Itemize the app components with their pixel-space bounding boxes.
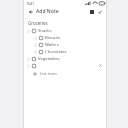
staticText: Chocolates <box>45 49 67 55</box>
staticText: Wafers <box>45 42 59 48</box>
button[interactable]: Save note <box>96 8 103 15</box>
button[interactable]: Back <box>27 8 34 15</box>
button[interactable]: Background color <box>88 8 95 15</box>
button[interactable]: Chocolates <box>24 48 106 55</box>
button[interactable]: Snacks <box>24 27 106 34</box>
staticText: Add Note <box>36 8 59 15</box>
staticText: Groceries <box>28 20 48 26</box>
button[interactable]: List item <box>24 70 106 77</box>
staticText: Vegetables <box>38 56 60 62</box>
button[interactable]: Wafers <box>24 41 106 48</box>
staticText: Snacks <box>38 28 52 34</box>
staticText: List item <box>40 71 57 77</box>
button[interactable]: Remove item <box>24 62 106 69</box>
button[interactable]: Vegetables <box>24 55 106 62</box>
button[interactable]: Biscuits <box>24 34 106 41</box>
button[interactable]: Remove item <box>98 63 103 68</box>
staticText: Biscuits <box>45 35 61 41</box>
staticText: 9:41 <box>27 1 35 6</box>
